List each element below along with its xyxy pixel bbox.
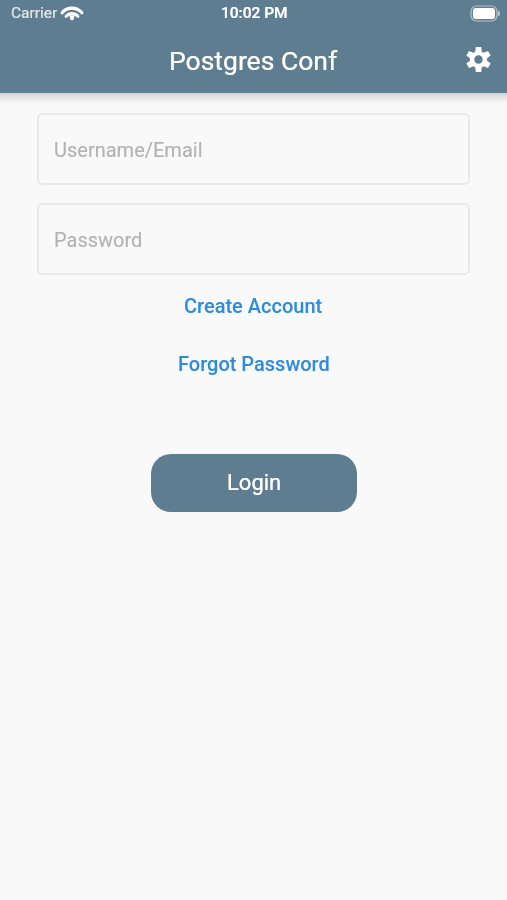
staticText: 10:02 PM	[221, 4, 288, 22]
button[interactable]: Username/Email	[37, 113, 470, 185]
staticText: Create Account	[184, 294, 323, 317]
staticText: Forgot Password	[178, 352, 330, 375]
staticText: Login	[227, 470, 282, 496]
staticText: Carrier	[11, 4, 58, 22]
button[interactable]: Login	[151, 454, 357, 512]
staticText: Username/Email	[54, 138, 203, 161]
button[interactable]: Forgot Password	[168, 347, 340, 380]
button[interactable]: Settings	[455, 36, 502, 83]
staticText: Password	[54, 228, 143, 251]
staticText: Postgres Conf	[169, 45, 338, 76]
button[interactable]: Password	[37, 203, 470, 275]
button[interactable]: Create Account	[174, 289, 333, 322]
